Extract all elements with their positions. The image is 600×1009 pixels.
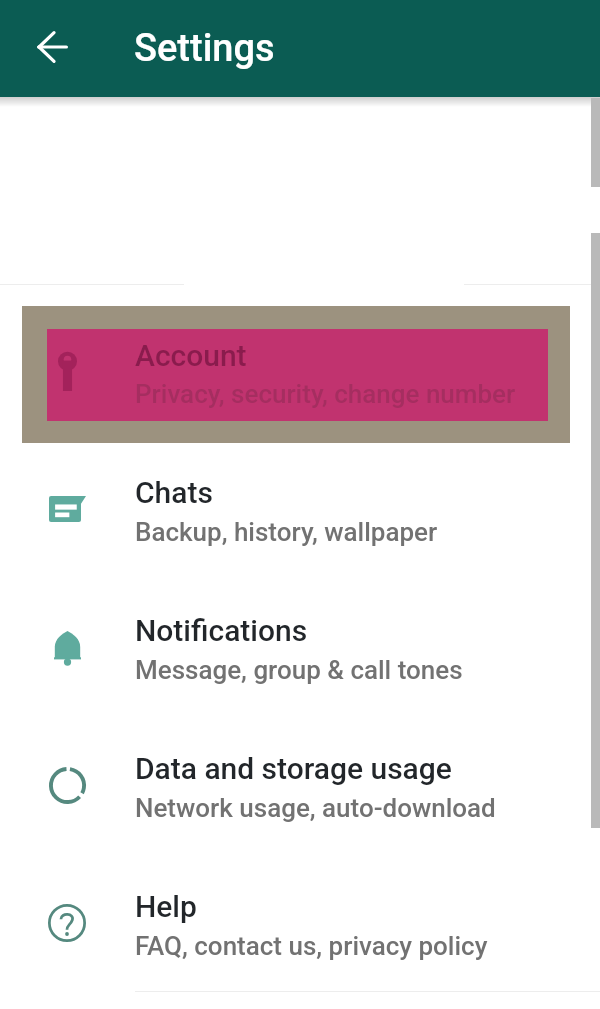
button[interactable]: Chats xyxy=(0,433,600,571)
button[interactable]: Account xyxy=(22,306,570,443)
staticText: Network usage, auto-download xyxy=(135,793,496,823)
staticText: Account xyxy=(135,338,247,373)
staticText: Settings xyxy=(134,26,275,71)
staticText: Chats xyxy=(135,475,213,510)
staticText: Backup, history, wallpaper xyxy=(135,517,438,547)
staticText: Data and storage usage xyxy=(135,751,452,786)
staticText: Message, group & call tones xyxy=(135,655,463,685)
staticText: Help xyxy=(135,889,197,924)
staticText: Privacy, security, change number xyxy=(135,379,516,409)
button[interactable]: Back xyxy=(28,23,76,71)
staticText: FAQ, contact us, privacy policy xyxy=(135,931,488,961)
button[interactable]: Notifications xyxy=(0,571,600,709)
staticText: Notifications xyxy=(135,613,308,648)
button[interactable]: Data and storage usage xyxy=(0,709,600,847)
button[interactable]: Help xyxy=(0,847,600,985)
